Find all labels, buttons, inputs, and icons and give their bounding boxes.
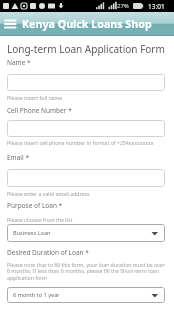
staticText: Please choose from the list bbox=[7, 216, 73, 223]
staticText: 27% bbox=[117, 2, 129, 10]
staticText: Please enter a valid email address bbox=[7, 190, 90, 197]
button[interactable] bbox=[0, 12, 20, 36]
button[interactable]: 6 month to 1 year bbox=[7, 287, 165, 303]
staticText: Kenya Quick Loans Shop bbox=[22, 17, 152, 32]
button[interactable]: Business Loan bbox=[7, 224, 165, 242]
button[interactable] bbox=[7, 169, 165, 187]
staticText: Please insert full name bbox=[7, 94, 63, 101]
button[interactable] bbox=[7, 120, 165, 137]
staticText: Email * bbox=[7, 153, 29, 162]
staticText: Please insert cell phone number in forma… bbox=[7, 139, 154, 146]
staticText: 6 month to 1 year bbox=[13, 291, 60, 299]
staticText: Cell Phone Number * bbox=[7, 106, 72, 115]
staticText: Please note that to fill this form, your… bbox=[7, 261, 165, 282]
staticText: Desired Duration of Loan * bbox=[7, 248, 89, 257]
staticText: Name * bbox=[7, 58, 31, 67]
staticText: Business Loan bbox=[13, 229, 51, 237]
staticText: Purpose of Loan * bbox=[7, 201, 63, 210]
button[interactable] bbox=[7, 74, 165, 91]
staticText: Long-term Loan Application Form bbox=[7, 42, 165, 56]
staticText: 13:01 bbox=[148, 2, 165, 11]
